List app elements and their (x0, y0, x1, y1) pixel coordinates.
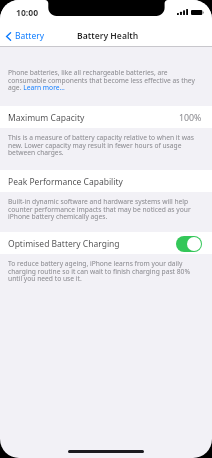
button[interactable]: Battery (3, 28, 50, 44)
staticText: 10:00 (16, 7, 39, 19)
button[interactable]: Peak Performance Capability (0, 170, 212, 192)
button[interactable]: Optimised Battery Charging (0, 232, 212, 254)
staticText: This is a measure of battery capacity re… (8, 133, 198, 157)
button[interactable]: Maximum Capacity (0, 106, 212, 128)
button[interactable]: Optimised Battery Charging (176, 236, 202, 252)
staticText: Optimised Battery Charging (8, 238, 120, 250)
staticText: 100% (179, 112, 202, 124)
staticText: Battery Health (77, 30, 139, 42)
staticText: To reduce battery ageing, iPhone learns … (8, 259, 198, 283)
staticText: Built-in dynamic software and hardware s… (8, 197, 198, 221)
staticText: Phone batteries, like all rechargeable b… (8, 68, 198, 92)
staticText: Peak Performance Capability (8, 176, 123, 188)
staticText: Maximum Capacity (8, 112, 85, 124)
staticText: Battery (15, 30, 45, 42)
